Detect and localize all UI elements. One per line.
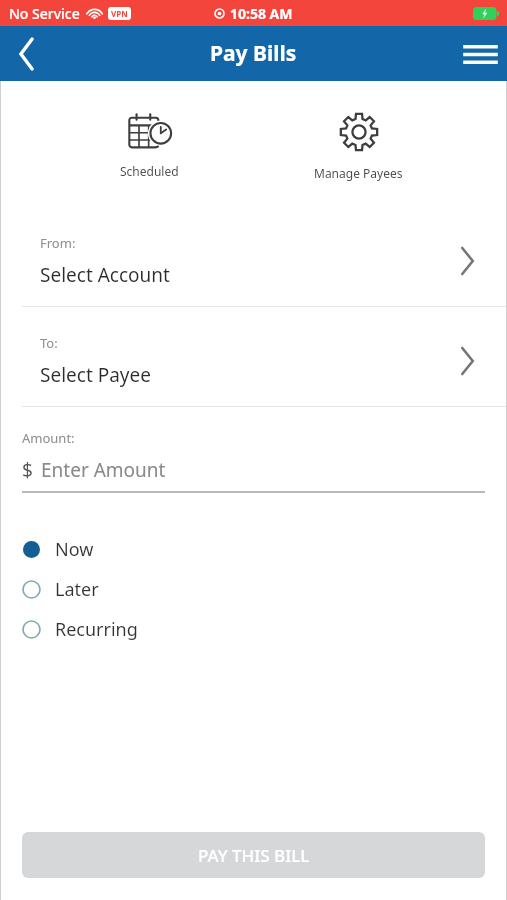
staticText: VPN: [111, 8, 128, 19]
button[interactable]: Later: [0, 569, 507, 609]
button[interactable]: Back: [0, 27, 54, 81]
staticText: Recurring: [55, 617, 138, 642]
button[interactable]: PAY THIS BILL: [22, 832, 485, 878]
staticText: Now: [55, 537, 94, 562]
button[interactable]: To:: [0, 316, 507, 406]
staticText: $: [22, 457, 33, 483]
staticText: Enter Amount: [41, 457, 166, 483]
staticText: No Service: [9, 4, 80, 23]
staticText: Later: [55, 577, 99, 602]
button[interactable]: From:: [0, 216, 507, 306]
staticText: From:: [40, 234, 76, 252]
staticText: To:: [40, 334, 58, 352]
button[interactable]: Scheduled: [87, 93, 212, 198]
staticText: Amount:: [22, 429, 75, 447]
staticText: Select Payee: [40, 362, 151, 388]
staticText: PAY THIS BILL: [198, 844, 310, 867]
staticText: Scheduled: [120, 163, 179, 179]
staticText: 10:58 AM: [230, 4, 293, 23]
button[interactable]: Now: [0, 529, 507, 569]
staticText: Manage Payees: [314, 165, 403, 181]
staticText: Select Account: [40, 262, 170, 288]
staticText: Pay Bills: [210, 39, 297, 68]
button[interactable]: Manage Payees: [296, 93, 421, 198]
button[interactable]: Menu: [453, 27, 507, 81]
button[interactable]: Recurring: [0, 609, 507, 649]
